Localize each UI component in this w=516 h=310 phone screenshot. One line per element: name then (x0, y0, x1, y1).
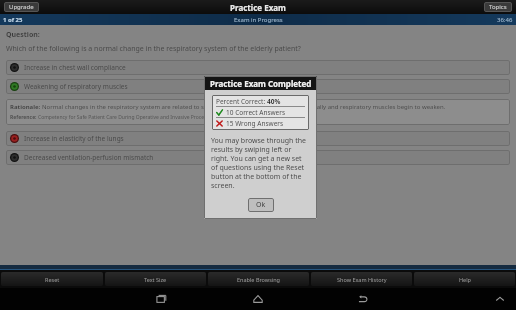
button[interactable]: Increase in elasticity of the lungs (6, 131, 510, 146)
button[interactable]: Show Exam History (311, 272, 412, 286)
staticText: Competency for Safe Patient Care During … (38, 114, 261, 121)
button[interactable]: Upgrade (4, 2, 39, 12)
staticText: Increase in elasticity of the lungs (24, 134, 124, 143)
staticText: Enable Browsing (237, 276, 280, 283)
staticText: Which of the following is a normal chang… (6, 44, 301, 54)
staticText: Normal changes in the respiratory system… (42, 103, 446, 111)
staticText: Help (459, 276, 471, 283)
staticText: Ok (256, 200, 266, 210)
staticText: 15 Wrong Answers (226, 119, 284, 128)
staticText: Reference: (10, 114, 38, 121)
button[interactable]: Decreased ventilation-perfusion mismatch (6, 150, 510, 165)
staticText: 10 Correct Answers (226, 108, 286, 117)
staticText: Decreased ventilation-perfusion mismatch (24, 153, 154, 162)
staticText: Rationale: (10, 103, 42, 111)
staticText: Exam in Progress (234, 16, 283, 24)
staticText: Question: (6, 30, 40, 40)
button[interactable]: Reset (1, 272, 103, 286)
staticText: You may browse through the results by sw… (211, 136, 310, 190)
button[interactable]: Ok (248, 198, 274, 212)
staticText: Increase in chest wall compliance (24, 63, 126, 72)
button[interactable]: Increase in chest wall compliance (6, 60, 510, 75)
staticText: Percent Correct: (216, 97, 267, 106)
staticText: Show Exam History (337, 276, 387, 283)
staticText: Topics (489, 3, 507, 11)
staticText: 36:46 (497, 16, 513, 24)
button[interactable]: Back (350, 288, 376, 310)
staticText: 1 of 25 (3, 16, 23, 24)
button[interactable]: Enable Browsing (208, 272, 309, 286)
staticText: Reset (45, 276, 60, 283)
button[interactable]: Text Size (105, 272, 206, 286)
button[interactable]: Home (245, 288, 271, 310)
staticText: Text Size (144, 276, 167, 283)
staticText: Weakening of respiratory muscles (24, 82, 128, 91)
button[interactable]: Expand (490, 289, 510, 309)
button[interactable]: Help (414, 272, 515, 286)
staticText: Upgrade (9, 3, 34, 11)
staticText: Practice Exam Completed (210, 78, 312, 89)
button[interactable]: Topics (484, 2, 512, 12)
button[interactable]: Recents (148, 288, 174, 310)
button[interactable]: Weakening of respiratory muscles (6, 79, 510, 94)
staticText: Practice Exam (230, 2, 286, 13)
staticText: 40% (267, 97, 281, 106)
